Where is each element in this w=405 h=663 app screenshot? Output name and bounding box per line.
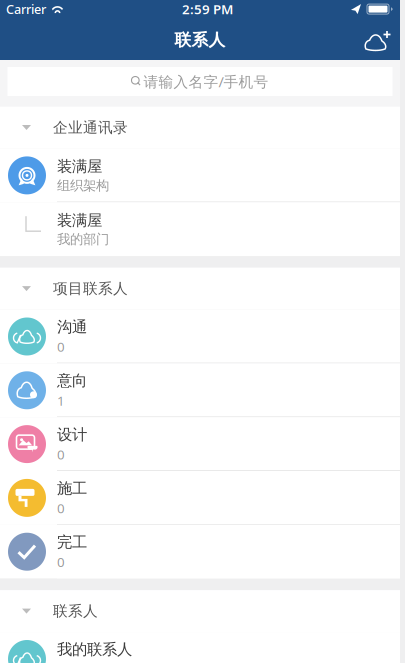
button[interactable]: 装满屋 [0,148,400,202]
staticText: 我的联系人 [57,640,132,659]
staticText: 2:59 PM [182,0,233,18]
staticText: 联系人 [53,602,98,620]
staticText: 我的部门 [57,231,109,248]
staticText: 请输入名字/手机号 [143,71,268,91]
staticText: 0 [57,553,65,571]
button[interactable]: 设计 [0,417,400,471]
staticText: 0 [57,445,65,463]
staticText: Carrier [6,0,46,18]
staticText: 完工 [57,532,87,552]
button[interactable]: 完工 [0,525,400,579]
staticText: 施工 [57,479,87,498]
staticText: 意向 [57,371,87,390]
staticText: 1 [57,391,65,410]
staticText: 沟通 [57,317,87,337]
staticText: 项目联系人 [53,279,128,298]
button[interactable]: 装满屋 [0,202,400,256]
button[interactable]: Add [356,21,400,59]
button[interactable]: 施工 [0,471,400,525]
staticText: 0 [57,338,65,356]
button[interactable]: 我的联系人 [0,632,400,663]
button[interactable]: 意向 [0,363,400,417]
staticText: 企业通讯录 [53,118,128,137]
button[interactable]: 请输入名字/手机号 [7,67,392,96]
staticText: 组织架构 [57,177,109,194]
staticText: 设计 [57,425,87,444]
staticText: 装满屋 [57,211,102,230]
button[interactable]: 沟通 [0,310,400,363]
staticText: 0 [57,499,65,517]
staticText: 装满屋 [57,157,102,176]
staticText: 联系人 [174,29,225,50]
